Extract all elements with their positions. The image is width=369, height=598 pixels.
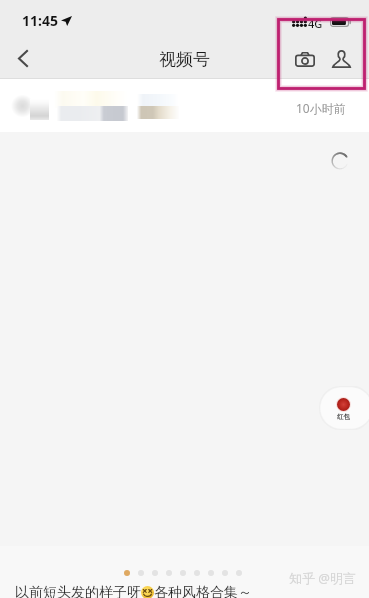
button[interactable]: Profile — [321, 39, 361, 79]
staticText: 10小时前 — [296, 100, 346, 116]
button[interactable]: Back — [1, 36, 45, 80]
staticText: 4G — [308, 16, 323, 31]
staticText: 红包 — [337, 413, 350, 421]
button[interactable]: Camera — [285, 39, 325, 79]
button[interactable]: Red Packet — [319, 386, 369, 430]
staticText: 以前短头发的样子呀 — [15, 584, 141, 598]
staticText: 11:45 — [22, 11, 58, 30]
staticText: 知乎 @明言 — [288, 569, 356, 587]
staticText: 各种风格合集～ — [154, 584, 252, 598]
staticText: 视频号 — [159, 49, 210, 70]
